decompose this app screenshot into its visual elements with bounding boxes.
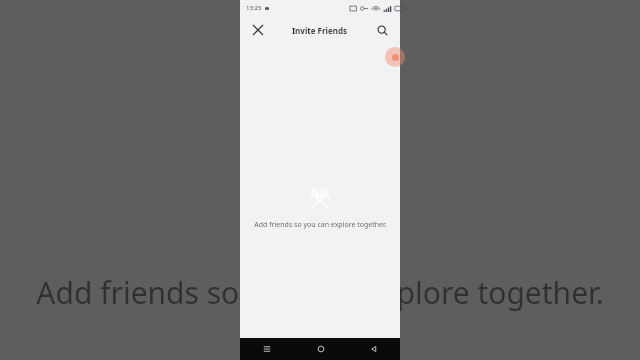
staticText: Add friends so you can explore together. [254, 220, 387, 230]
staticText: Invite Friends [292, 25, 348, 36]
button[interactable]: Home [294, 338, 347, 360]
staticText: 13:25 [246, 4, 262, 12]
staticText: Add friends so you can explore together. [36, 272, 604, 313]
button[interactable]: Search [372, 20, 392, 40]
button[interactable]: Back [347, 338, 400, 360]
button[interactable]: Add friend [385, 47, 405, 67]
button[interactable]: Recents [240, 338, 294, 360]
button[interactable]: Close [248, 20, 268, 40]
